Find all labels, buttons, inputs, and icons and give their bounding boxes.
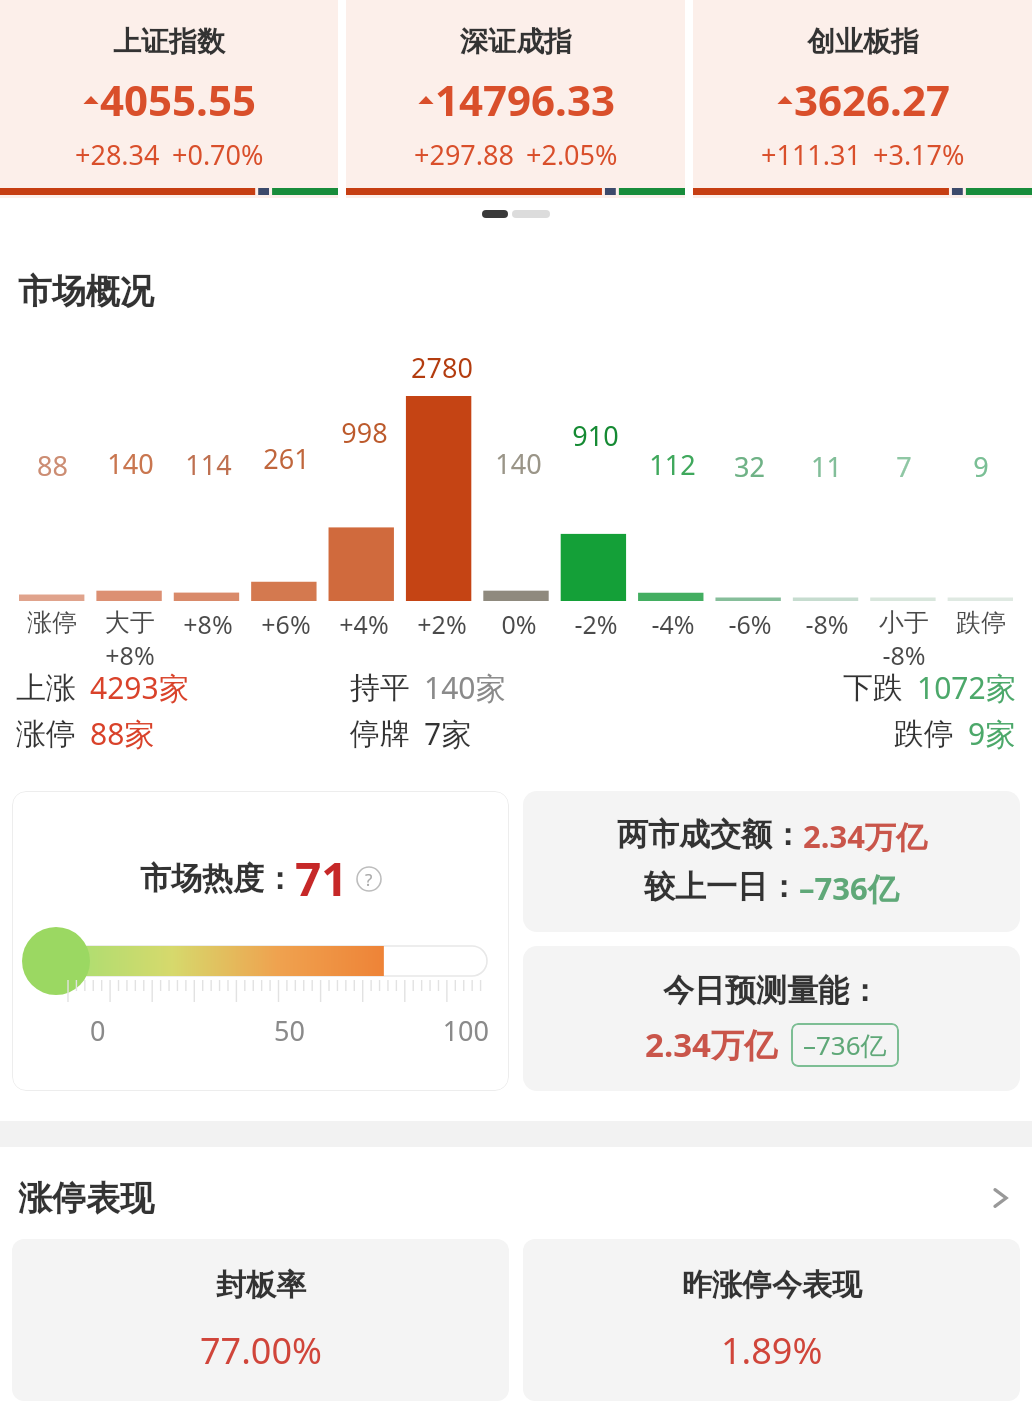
staticText: 创业板指 <box>807 24 919 59</box>
staticText: 112 <box>649 446 696 483</box>
staticText: 昨涨停今表现 <box>682 1266 862 1304</box>
staticText: +2.05% <box>526 136 618 173</box>
button[interactable]: 深证成指 <box>346 0 685 198</box>
button[interactable]: 上证指数 <box>0 0 338 198</box>
staticText: 大于 <box>105 607 155 638</box>
staticText: 市场热度： <box>140 859 295 898</box>
staticText: +6% <box>261 607 311 641</box>
staticText: 100 <box>356 1012 489 1049</box>
staticText: 深证成指 <box>460 24 572 59</box>
staticText: 14796.33 <box>435 71 615 128</box>
button[interactable]: 封板率 <box>12 1239 509 1401</box>
staticText: +8% <box>105 638 155 667</box>
staticText: 7 <box>896 448 912 485</box>
button[interactable]: 今日预测量能： <box>523 946 1020 1091</box>
staticText: 88 <box>37 447 68 484</box>
staticText: 0% <box>501 607 537 641</box>
staticText: +3.17% <box>873 136 965 173</box>
button[interactable]: 两市成交额： <box>523 791 1020 932</box>
staticText: –736亿 <box>799 867 899 909</box>
staticText: 2.34万亿 <box>645 1022 777 1067</box>
staticText: 涨停表现 <box>18 1177 986 1220</box>
staticText: 涨停 <box>16 715 76 753</box>
staticText: 3626.27 <box>794 71 950 128</box>
staticText: 11 <box>811 448 842 485</box>
staticText: 停牌 <box>350 715 410 753</box>
staticText: 小于 <box>879 607 929 638</box>
staticText: 261 <box>263 440 310 477</box>
staticText: 上证指数 <box>113 24 225 59</box>
staticText: 50 <box>223 1012 356 1049</box>
staticText: 持平 <box>350 669 410 707</box>
staticText: 跌停 <box>956 607 1006 638</box>
staticText: -4% <box>651 607 695 641</box>
staticText: +297.88 <box>414 136 514 173</box>
staticText: 9家 <box>968 713 1016 754</box>
staticText: +4% <box>339 607 389 641</box>
staticText: +28.34 <box>75 136 160 173</box>
staticText: 114 <box>185 446 232 483</box>
staticText: –736亿 <box>803 1027 887 1063</box>
staticText: 两市成交额： <box>617 815 803 854</box>
staticText: 77.00% <box>200 1326 322 1375</box>
staticText: 较上一日： <box>644 867 799 906</box>
staticText: 2.34万亿 <box>803 815 927 857</box>
staticText: 7家 <box>424 713 472 754</box>
staticText: ? <box>365 868 373 891</box>
staticText: 2780 <box>411 349 473 386</box>
staticText: 140 <box>495 445 542 482</box>
button[interactable]: 市场热度： <box>12 791 509 1091</box>
staticText: 4055.55 <box>100 71 256 128</box>
staticText: 140家 <box>424 667 506 708</box>
staticText: 1.89% <box>721 1326 823 1375</box>
staticText: -8% <box>805 607 849 641</box>
staticText: 下跌 <box>843 669 903 707</box>
staticText: 4293家 <box>90 667 189 708</box>
staticText: +111.31 <box>761 136 861 173</box>
staticText: 1072家 <box>917 667 1016 708</box>
staticText: 910 <box>572 417 619 454</box>
staticText: 32 <box>734 448 765 485</box>
button[interactable]: 涨停表现 <box>0 1169 1032 1227</box>
staticText: 跌停 <box>894 715 954 753</box>
staticText: 88家 <box>90 713 155 754</box>
staticText: -8% <box>882 638 926 667</box>
button[interactable]: 创业板指 <box>693 0 1032 198</box>
staticText: 0 <box>90 1012 223 1049</box>
staticText: 140 <box>107 445 154 482</box>
staticText: +8% <box>183 607 233 641</box>
staticText: 上涨 <box>16 669 76 707</box>
other: 查看更多 <box>986 1184 1014 1212</box>
staticText: 涨停 <box>27 607 77 638</box>
staticText: +2% <box>417 607 467 641</box>
staticText: 9 <box>973 448 989 485</box>
staticText: 71 <box>295 847 348 910</box>
staticText: -6% <box>728 607 772 641</box>
staticText: 市场概况 <box>18 270 154 313</box>
button[interactable]: 说明 <box>356 866 382 892</box>
staticText: 封板率 <box>216 1266 306 1304</box>
staticText: -2% <box>574 607 618 641</box>
staticText: +0.70% <box>172 136 264 173</box>
button[interactable]: 昨涨停今表现 <box>523 1239 1020 1401</box>
staticText: 今日预测量能： <box>663 971 880 1010</box>
staticText: 998 <box>341 414 388 451</box>
